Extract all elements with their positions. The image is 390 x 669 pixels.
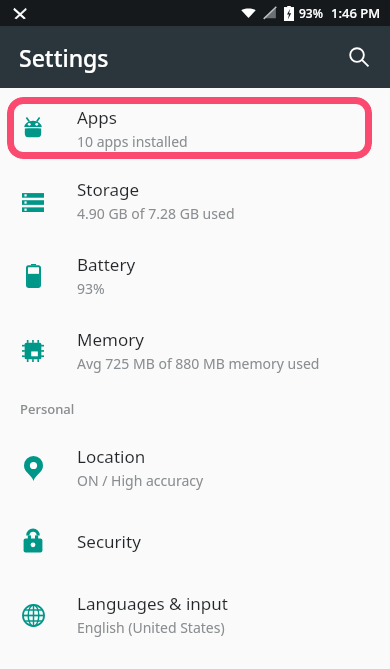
staticText: 93% — [77, 279, 105, 298]
button[interactable]: Memory — [0, 313, 390, 388]
button[interactable]: Location — [0, 430, 390, 505]
staticText: English (United States) — [77, 618, 225, 637]
staticText: 93% — [299, 5, 323, 21]
staticText: Memory — [77, 328, 144, 351]
button[interactable]: Apps — [7, 97, 372, 159]
staticText: Battery — [77, 253, 136, 276]
staticText: 4.90 GB of 7.28 GB used — [77, 204, 235, 223]
staticText: Location — [77, 445, 146, 468]
staticText: Apps — [77, 106, 117, 129]
staticText: Personal — [20, 400, 75, 418]
staticText: Avg 725 MB of 880 MB memory used — [77, 354, 320, 373]
staticText: Security — [77, 530, 141, 553]
button[interactable]: Languages & input — [0, 577, 390, 652]
staticText: 1:46 PM — [331, 4, 381, 22]
button[interactable]: Apps — [7, 97, 372, 159]
button[interactable]: Battery — [0, 238, 390, 313]
staticText: 10 apps installed — [77, 132, 188, 151]
button[interactable]: Search — [336, 34, 382, 80]
staticText: Settings — [19, 42, 109, 73]
staticText: ON / High accuracy — [77, 471, 204, 490]
button[interactable]: Security — [0, 505, 390, 577]
button[interactable]: Storage — [0, 163, 390, 238]
staticText: Storage — [77, 178, 140, 201]
staticText: Languages & input — [77, 592, 228, 615]
